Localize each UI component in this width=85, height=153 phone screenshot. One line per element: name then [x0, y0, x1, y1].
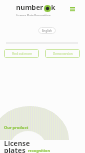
button[interactable]: Demo version [45, 49, 80, 58]
staticText: number [16, 3, 44, 13]
staticText: Find out more [12, 52, 32, 56]
staticText: License [4, 139, 31, 149]
button[interactable]: Menu [70, 7, 75, 11]
staticText: recognition [28, 148, 50, 153]
staticText: plates [4, 146, 28, 153]
button[interactable]: Find out more [4, 49, 39, 58]
staticText: English [42, 29, 52, 33]
staticText: k [51, 3, 56, 13]
staticText: Demo version [53, 52, 73, 56]
button[interactable]: English [38, 27, 56, 34]
staticText: Our product [4, 125, 29, 130]
staticText: License Plate Recognition [16, 14, 51, 16]
